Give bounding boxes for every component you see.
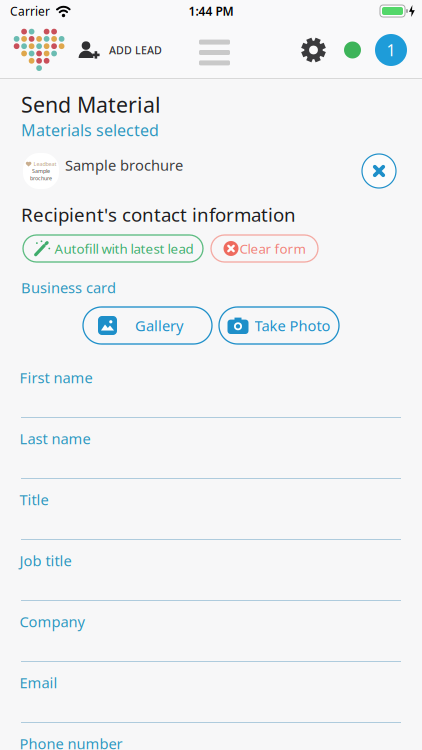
staticText: Last name xyxy=(19,429,90,448)
staticText: Autofill with latest lead xyxy=(54,240,193,257)
staticText: Sample xyxy=(32,167,50,175)
button[interactable]: ADD LEAD xyxy=(65,41,162,59)
staticText: Send Material xyxy=(21,90,161,119)
button[interactable]: Autofill with latest lead xyxy=(23,235,203,262)
staticText: Phone number xyxy=(19,734,122,750)
staticText: Carrier xyxy=(10,3,50,19)
staticText: Gallery xyxy=(135,316,183,335)
staticText: Sample brochure xyxy=(65,155,183,175)
staticText: Leadbeat xyxy=(33,160,56,167)
staticText: Recipient's contact information xyxy=(21,202,296,227)
staticText: Take Photo xyxy=(254,316,330,335)
staticText: Clear form xyxy=(239,240,305,257)
staticText: Email xyxy=(19,673,57,692)
staticText: Title xyxy=(19,490,48,509)
staticText: Materials selected xyxy=(21,119,159,141)
staticText: ADD LEAD xyxy=(109,43,162,57)
staticText: brochure xyxy=(30,174,52,182)
staticText: 1:44 PM xyxy=(188,3,233,19)
button[interactable]: Remove Sample brochure xyxy=(362,154,396,188)
staticText: First name xyxy=(19,368,92,387)
staticText: Job title xyxy=(19,551,71,570)
button[interactable]: Clear form xyxy=(211,235,318,262)
staticText: Company xyxy=(19,612,84,631)
button[interactable]: Menu xyxy=(199,40,230,65)
button[interactable]: Notifications xyxy=(375,34,407,66)
button[interactable]: Gallery xyxy=(83,307,212,344)
staticText: Business card xyxy=(21,278,116,297)
button[interactable]: Settings xyxy=(300,36,327,63)
button[interactable]: Take Photo xyxy=(219,307,339,344)
staticText: 1 xyxy=(386,39,395,61)
